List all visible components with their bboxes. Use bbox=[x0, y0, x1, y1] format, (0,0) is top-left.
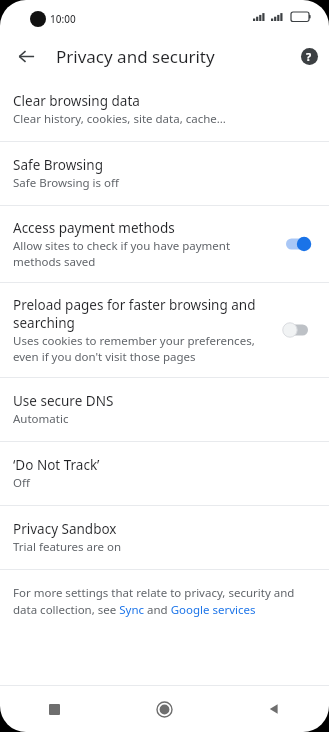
staticText: Off bbox=[13, 475, 30, 491]
staticText: Automatic bbox=[13, 411, 69, 427]
staticText: Clear browsing data bbox=[13, 92, 140, 110]
button[interactable]: Back bbox=[10, 40, 42, 72]
staticText: Privacy Sandbox bbox=[13, 520, 117, 538]
staticText: Allow sites to check if you have payment… bbox=[13, 238, 269, 269]
staticText: Safe Browsing bbox=[13, 156, 103, 174]
button[interactable]: Privacy Sandbox bbox=[0, 506, 329, 569]
button[interactable]: Access payment methods bbox=[0, 206, 329, 282]
button[interactable]: Use secure DNS bbox=[0, 378, 329, 441]
button[interactable]: Toggle on bbox=[277, 231, 317, 257]
button[interactable]: ‘Do Not Track’ bbox=[0, 442, 329, 505]
button[interactable]: Clear browsing data bbox=[0, 78, 329, 141]
staticText: Trial features are on bbox=[13, 539, 122, 555]
button[interactable]: Back bbox=[219, 686, 329, 732]
button[interactable]: Home bbox=[109, 686, 219, 732]
staticText: Safe Browsing is off bbox=[13, 175, 119, 191]
button[interactable]: Preload pages for faster browsing and se… bbox=[0, 283, 329, 377]
staticText: ‘Do Not Track’ bbox=[13, 456, 100, 474]
staticText: Clear history, cookies, site data, cache… bbox=[13, 111, 226, 127]
staticText: Uses cookies to remember your preference… bbox=[13, 333, 269, 364]
staticText: Access payment methods bbox=[13, 219, 175, 237]
button[interactable]: Safe Browsing bbox=[0, 142, 329, 205]
staticText: Privacy and security bbox=[56, 45, 215, 68]
staticText: ? bbox=[306, 49, 312, 64]
staticText: Use secure DNS bbox=[13, 392, 114, 410]
button[interactable]: Toggle off bbox=[277, 317, 317, 343]
staticText: Preload pages for faster browsing and se… bbox=[13, 296, 269, 332]
staticText: 10:00 bbox=[50, 12, 76, 26]
button[interactable]: Help bbox=[293, 40, 325, 72]
button[interactable]: Recents bbox=[0, 686, 109, 732]
staticText: For more settings that relate to privacy… bbox=[13, 585, 313, 617]
